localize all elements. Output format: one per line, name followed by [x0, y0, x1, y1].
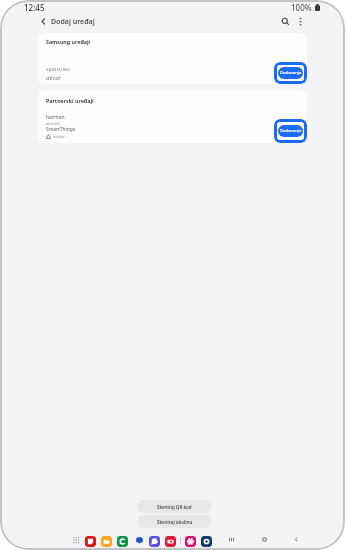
staticText: Dodaj uređaj [51, 17, 95, 27]
staticText: Partnerski uređaji [46, 97, 94, 104]
staticText: moder [53, 134, 65, 139]
staticText: décor [46, 74, 61, 82]
button[interactable]: Phone [117, 536, 128, 547]
staticText: harman [46, 114, 65, 121]
button[interactable]: More options [294, 15, 307, 28]
button[interactable]: Skeniraj okolinu [137, 515, 212, 528]
button[interactable]: Samsung uređaji [38, 33, 307, 84]
button[interactable]: All apps [71, 535, 81, 545]
button[interactable]: Dodavanje [274, 62, 307, 84]
staticText: 12:45 [24, 2, 45, 13]
button[interactable]: Gallery [185, 536, 196, 547]
button[interactable]: Home [259, 534, 270, 545]
button[interactable]: Back [37, 15, 50, 28]
button[interactable]: Partnerski uređaji [38, 90, 307, 143]
staticText: SmartThings [46, 126, 76, 133]
button[interactable]: Camera [165, 536, 176, 547]
button[interactable]: Keep notes [85, 536, 96, 547]
button[interactable]: Dodavanje [274, 119, 307, 143]
button[interactable]: Recents [226, 534, 237, 545]
staticText: Skeniraj QR kod [157, 504, 192, 510]
staticText: works with [46, 122, 60, 126]
button[interactable]: Skeniraj QR kod [137, 500, 212, 513]
staticText: Dodavanje [280, 70, 302, 76]
button[interactable]: Internet [149, 536, 160, 547]
button[interactable]: Settings [201, 536, 212, 547]
staticText: Skeniraj okolinu [157, 519, 193, 525]
button[interactable]: Back [291, 534, 302, 545]
button[interactable]: My Files [101, 536, 112, 547]
staticText: 100% [291, 2, 312, 13]
staticText: Dodavanje [280, 128, 302, 134]
button[interactable]: Search [279, 15, 292, 28]
staticText: Samsung uređaji [46, 38, 91, 45]
staticText: SAMSUNG [46, 67, 71, 73]
button[interactable]: Messages [134, 535, 144, 545]
